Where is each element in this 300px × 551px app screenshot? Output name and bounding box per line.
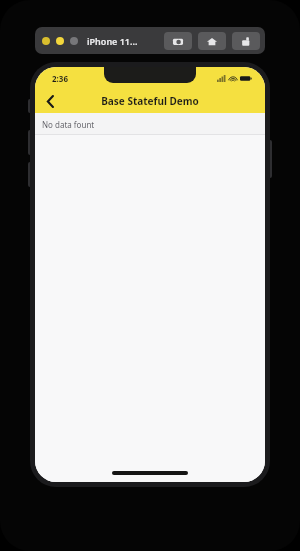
staticText: No data fount bbox=[42, 119, 95, 130]
staticText: 2:36 bbox=[52, 73, 68, 84]
button[interactable]: Minimize bbox=[56, 37, 64, 45]
button[interactable]: Back bbox=[35, 89, 65, 113]
button[interactable]: Screenshot bbox=[164, 32, 192, 50]
button[interactable]: Close bbox=[42, 37, 50, 45]
button[interactable]: No data fount bbox=[35, 113, 265, 135]
staticText: iPhone 11... bbox=[87, 35, 138, 47]
button[interactable]: Rotate bbox=[232, 32, 260, 50]
button[interactable]: Zoom bbox=[70, 37, 78, 45]
button[interactable]: Home bbox=[198, 32, 226, 50]
staticText: Base Stateful Demo bbox=[101, 94, 199, 108]
